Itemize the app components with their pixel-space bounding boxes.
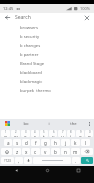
button[interactable]: h [51, 139, 60, 146]
button[interactable]: Home [32, 166, 63, 175]
button[interactable]: s [13, 139, 21, 146]
staticText: 5 [43, 130, 45, 134]
staticText: y [52, 134, 55, 137]
staticText: c [34, 149, 37, 155]
staticText: h [54, 140, 57, 146]
staticText: n [64, 149, 67, 155]
staticText: 12:45 [3, 6, 14, 11]
staticText: burpek thermo [20, 88, 51, 94]
button[interactable]: , [15, 157, 23, 164]
button[interactable]: 3 [21, 130, 30, 137]
button[interactable]: Google search [0, 119, 14, 128]
staticText: m [73, 149, 78, 155]
button[interactable]: Shift [1, 148, 12, 155]
button[interactable]: f [31, 139, 40, 146]
staticText: r [34, 134, 36, 137]
button[interactable]: Back [0, 166, 32, 175]
staticText: browsers [20, 25, 39, 31]
button[interactable]: k [71, 139, 80, 146]
button[interactable]: Clear search [83, 14, 90, 21]
staticText: , [18, 158, 20, 164]
staticText: a [7, 140, 10, 146]
staticText: b security [20, 34, 40, 40]
button[interactable]: z [13, 148, 21, 155]
staticText: u [61, 134, 64, 137]
button[interactable]: b security [0, 32, 94, 41]
button[interactable]: m [71, 148, 80, 155]
staticText: 3 [25, 130, 27, 134]
button[interactable]: Back [4, 14, 11, 21]
staticText: ?123 [4, 159, 11, 163]
button[interactable]: More suggestions [85, 119, 94, 128]
button[interactable]: Recent apps [63, 166, 94, 175]
button[interactable]: 6 [49, 130, 57, 137]
staticText: s [16, 140, 19, 146]
button[interactable]: a [4, 139, 12, 146]
button[interactable]: j [61, 139, 70, 146]
staticText: blackboard [20, 70, 42, 76]
staticText: j [65, 140, 67, 146]
staticText: 1 [5, 130, 7, 134]
staticText: f [35, 140, 37, 146]
button[interactable]: l [81, 139, 90, 146]
button[interactable]: . [72, 157, 80, 164]
button[interactable]: Backspace [81, 148, 93, 155]
button[interactable]: x [22, 148, 30, 155]
button[interactable]: Space [33, 157, 71, 164]
staticText: 8 [70, 130, 72, 134]
button[interactable]: Brand Stage [0, 59, 94, 68]
staticText: . [75, 158, 77, 164]
staticText: 4 [34, 130, 36, 134]
button[interactable]: b changes [0, 41, 94, 50]
staticText: i [70, 134, 72, 137]
button[interactable]: ?123 [1, 157, 14, 164]
button[interactable]: v [41, 148, 50, 155]
button[interactable]: c [31, 148, 40, 155]
button[interactable]: Search [81, 157, 93, 164]
staticText: k [74, 140, 77, 146]
staticText: l [85, 140, 87, 146]
button[interactable]: g [41, 139, 50, 146]
button[interactable]: browsers [0, 23, 94, 32]
staticText: bo [23, 121, 29, 127]
staticText: t [43, 134, 45, 137]
staticText: Brand Stage [20, 61, 45, 67]
staticText: the [70, 121, 77, 127]
button[interactable]: the [61, 119, 85, 128]
staticText: p [88, 134, 91, 137]
button[interactable]: burpek thermo [0, 86, 94, 95]
button[interactable]: Voice input [24, 157, 32, 164]
button[interactable]: 5 [40, 130, 48, 137]
staticText: 2 [15, 130, 17, 134]
button[interactable]: d [22, 139, 30, 146]
staticText: blackmagic [20, 79, 43, 85]
staticText: Search [15, 14, 31, 21]
staticText: i [48, 121, 50, 127]
button[interactable]: Search [15, 14, 83, 21]
button[interactable]: 2 [11, 130, 20, 137]
button[interactable]: 7 [58, 130, 66, 137]
button[interactable]: 0 [85, 130, 93, 137]
staticText: x [25, 149, 28, 155]
button[interactable]: 9 [76, 130, 84, 137]
button[interactable]: 1 [1, 130, 10, 137]
staticText: w [14, 134, 18, 137]
button[interactable]: blackmagic [0, 77, 94, 86]
button[interactable]: bo [14, 119, 37, 128]
button[interactable]: i [37, 119, 61, 128]
staticText: v [44, 149, 47, 155]
staticText: z [16, 149, 19, 155]
button[interactable]: blackboard [0, 68, 94, 77]
button[interactable]: 4 [31, 130, 39, 137]
button[interactable]: b [51, 148, 60, 155]
staticText: 100% [80, 6, 91, 11]
staticText: 7 [62, 130, 64, 134]
staticText: 6 [53, 130, 55, 134]
button[interactable]: b partner [0, 50, 94, 59]
button[interactable]: n [61, 148, 70, 155]
staticText: g [44, 140, 47, 146]
staticText: b [54, 149, 57, 155]
button[interactable]: 8 [67, 130, 75, 137]
staticText: 9 [80, 130, 82, 134]
staticText: d [25, 140, 28, 146]
